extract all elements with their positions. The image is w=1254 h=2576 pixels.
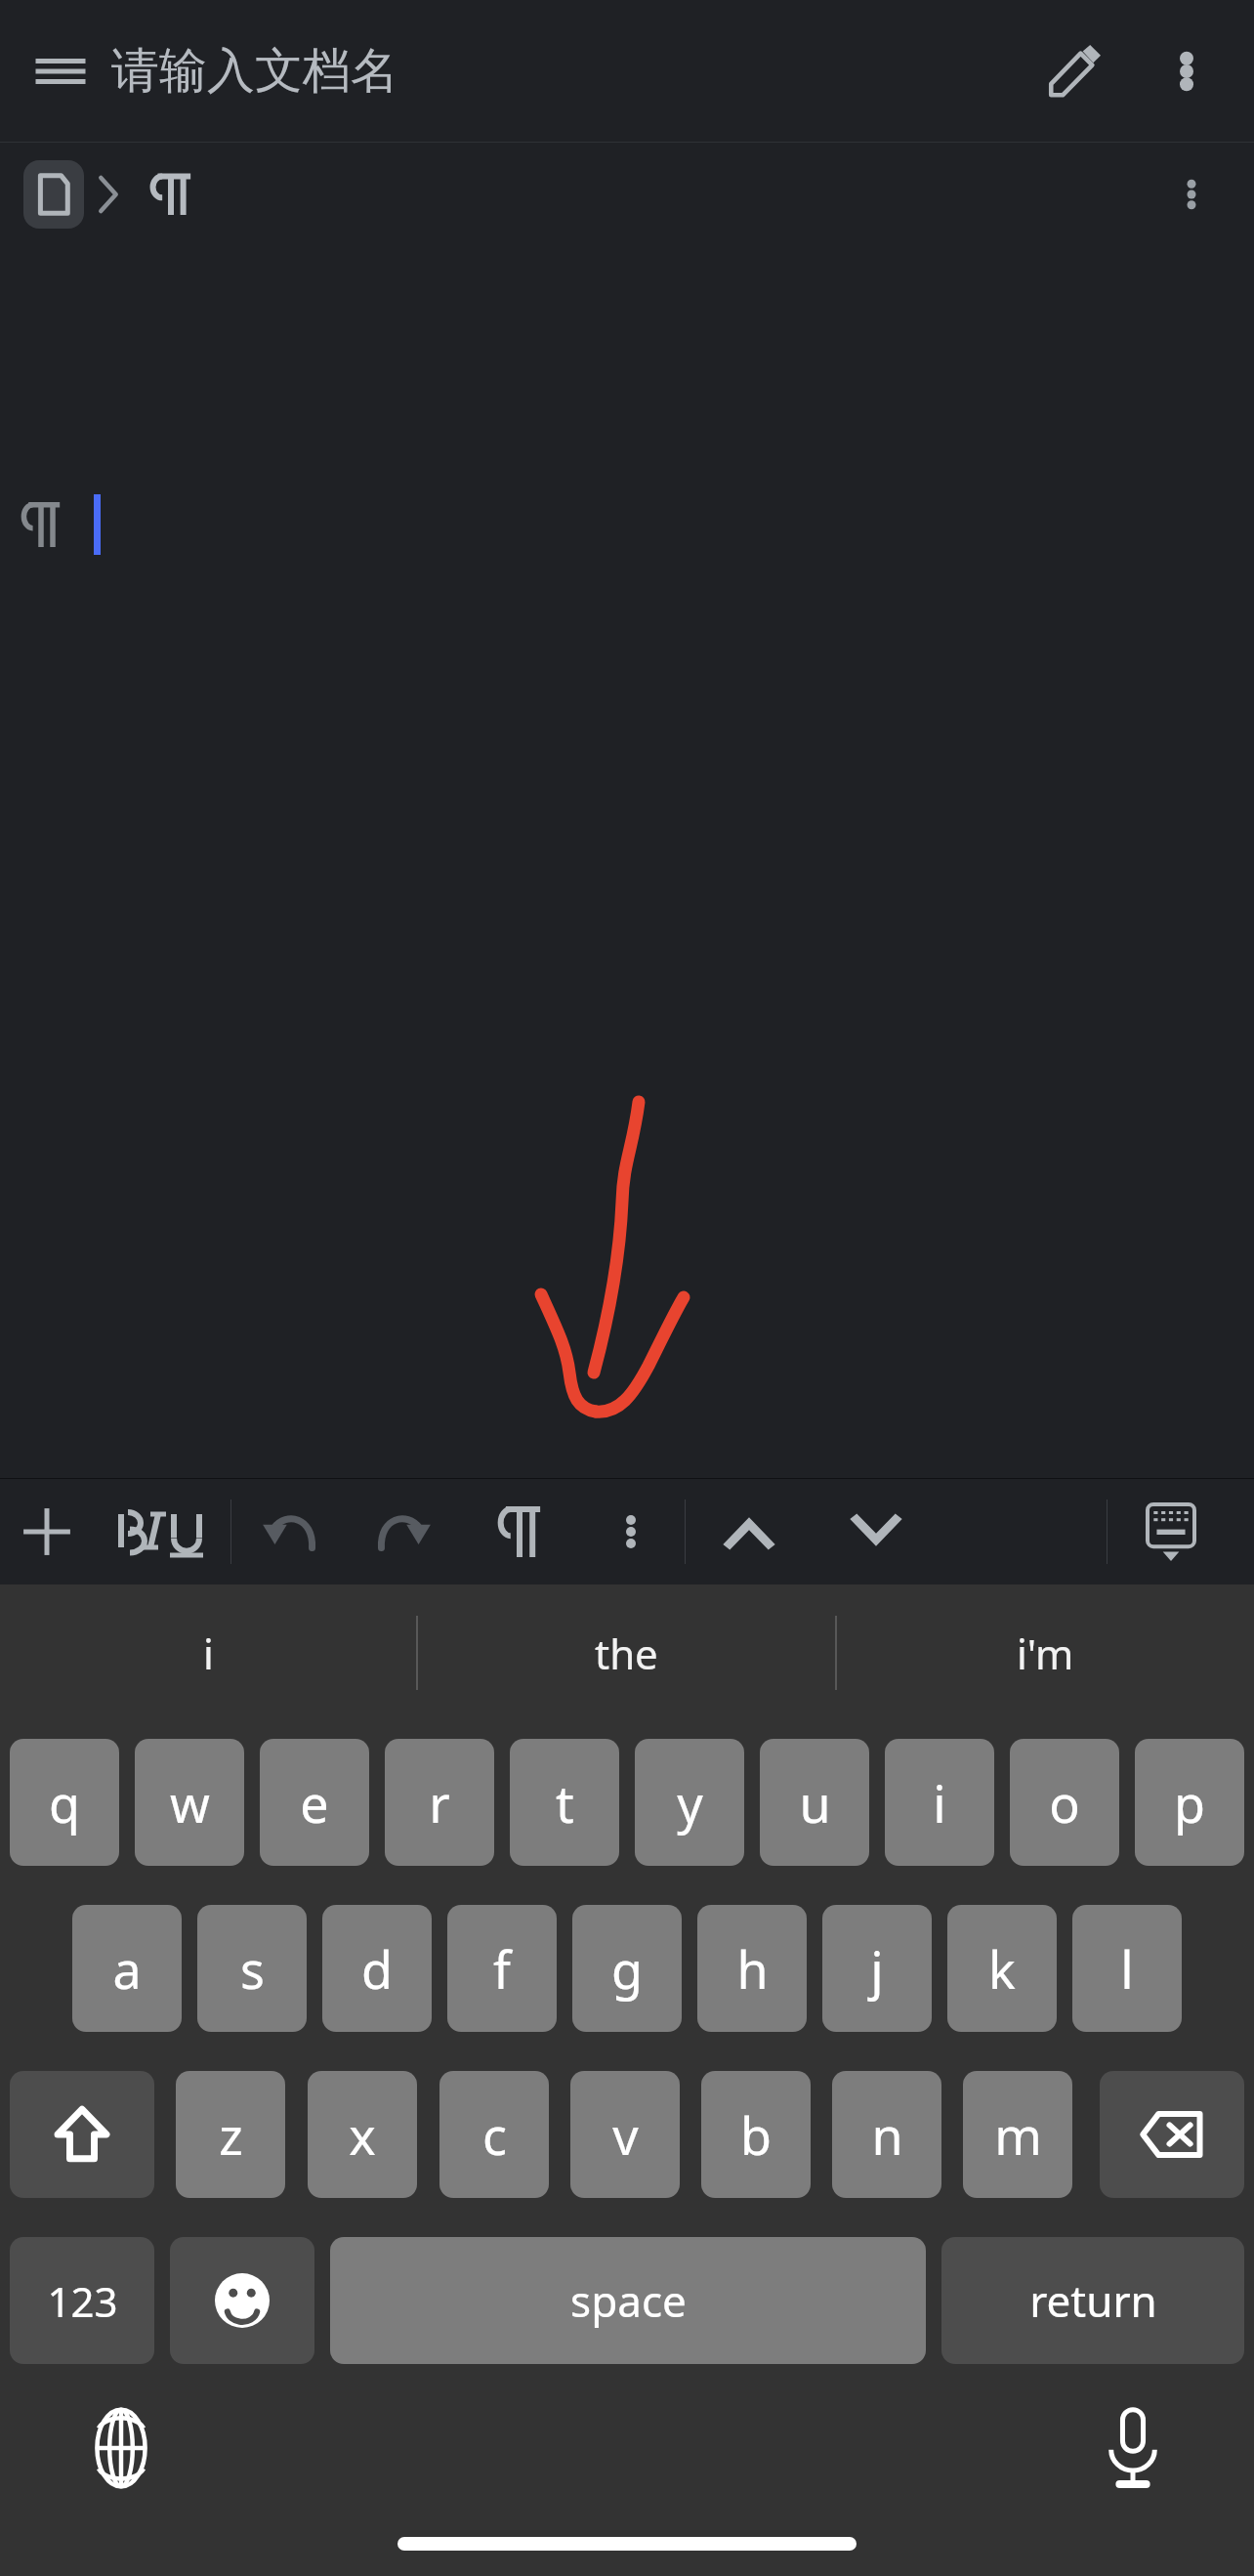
button[interactable]: Change language — [74, 2401, 168, 2495]
button[interactable]: b — [701, 2071, 811, 2198]
staticText: i'm — [1017, 1626, 1074, 1681]
button[interactable]: Redo — [347, 1479, 462, 1584]
staticText: y — [677, 1768, 703, 1837]
staticText: x — [349, 2100, 376, 2170]
staticText: r — [429, 1768, 450, 1837]
staticText: 请输入文档名 — [111, 41, 398, 102]
button[interactable]: m — [963, 2071, 1072, 2198]
button[interactable]: i — [885, 1739, 994, 1866]
button[interactable]: o — [1010, 1739, 1119, 1866]
staticText: l — [1120, 1934, 1134, 2004]
button[interactable]: i'm — [837, 1584, 1254, 1721]
staticText: f — [493, 1934, 511, 2004]
button[interactable]: z — [176, 2071, 285, 2198]
button[interactable]: More options — [1133, 18, 1240, 125]
button[interactable]: k — [947, 1905, 1057, 2032]
button[interactable]: y — [635, 1739, 744, 1866]
button[interactable]: h — [697, 1905, 807, 2032]
button[interactable]: j — [822, 1905, 932, 2032]
button[interactable]: space — [330, 2237, 926, 2364]
staticText: k — [988, 1934, 1016, 2004]
button[interactable]: Breadcrumb options — [1143, 146, 1240, 243]
button[interactable]: Hide keyboard — [1108, 1479, 1234, 1584]
button[interactable]: Insert — [0, 1479, 94, 1584]
button[interactable]: v — [570, 2071, 680, 2198]
button[interactable]: Paragraph style — [137, 160, 205, 229]
button[interactable]: 123 — [10, 2237, 154, 2364]
button[interactable]: w — [135, 1739, 244, 1866]
button[interactable]: return — [941, 2237, 1244, 2364]
staticText: return — [1029, 2271, 1157, 2330]
button[interactable]: s — [197, 1905, 307, 2032]
button[interactable]: t — [510, 1739, 619, 1866]
staticText: c — [482, 2100, 507, 2170]
staticText: t — [556, 1768, 574, 1837]
button[interactable]: i — [0, 1584, 416, 1721]
button[interactable]: the — [418, 1584, 835, 1721]
button[interactable]: Undo — [231, 1479, 347, 1584]
button[interactable]: Text format — [94, 1479, 230, 1584]
staticText: g — [611, 1934, 643, 2004]
staticText: u — [799, 1768, 831, 1837]
staticText: j — [870, 1934, 884, 2004]
button[interactable]: u — [760, 1739, 869, 1866]
staticText: i — [203, 1626, 214, 1681]
staticText: b — [740, 2100, 772, 2170]
button[interactable]: p — [1135, 1739, 1244, 1866]
staticText: m — [994, 2100, 1042, 2170]
staticText: a — [112, 1934, 142, 2004]
button[interactable]: n — [832, 2071, 941, 2198]
button[interactable]: Voice input — [1086, 2401, 1180, 2495]
staticText: s — [240, 1934, 265, 2004]
button[interactable]: e — [260, 1739, 369, 1866]
staticText: v — [612, 2100, 639, 2170]
button[interactable]: r — [385, 1739, 494, 1866]
button[interactable]: Move down — [813, 1479, 940, 1584]
staticText: o — [1049, 1768, 1080, 1837]
button[interactable]: a — [72, 1905, 182, 2032]
staticText: 123 — [47, 2273, 118, 2329]
button[interactable]: f — [447, 1905, 557, 2032]
button[interactable]: Emoji — [170, 2237, 314, 2364]
button[interactable]: Shift — [10, 2071, 154, 2198]
staticText: i — [933, 1768, 946, 1837]
button[interactable]: Move up — [686, 1479, 813, 1584]
button[interactable]: c — [439, 2071, 549, 2198]
staticText: z — [219, 2100, 243, 2170]
button[interactable]: l — [1072, 1905, 1182, 2032]
staticText: space — [570, 2271, 687, 2330]
button[interactable]: g — [572, 1905, 682, 2032]
staticText: the — [595, 1626, 658, 1681]
button[interactable]: x — [308, 2071, 417, 2198]
button[interactable]: d — [322, 1905, 432, 2032]
staticText: h — [736, 1934, 769, 2004]
staticText: d — [361, 1934, 393, 2004]
button[interactable]: q — [10, 1739, 119, 1866]
button[interactable]: Backspace — [1100, 2071, 1244, 2198]
button[interactable]: Menu — [18, 28, 104, 114]
button[interactable]: More formatting — [577, 1479, 685, 1584]
staticText: w — [170, 1768, 210, 1837]
button[interactable]: Edit — [1016, 13, 1133, 130]
button[interactable]: Paragraph — [462, 1479, 577, 1584]
staticText: n — [871, 2100, 903, 2170]
staticText: q — [49, 1768, 80, 1837]
staticText: e — [300, 1768, 329, 1837]
staticText: p — [1174, 1768, 1205, 1837]
button[interactable]: Document — [23, 160, 84, 229]
